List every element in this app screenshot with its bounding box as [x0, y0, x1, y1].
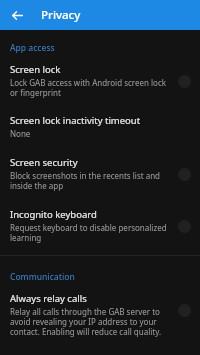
button[interactable]: Always relay calls toggle: [174, 300, 194, 320]
staticText: Incognito keyboard: [10, 208, 97, 221]
staticText: Always relay calls: [10, 292, 87, 305]
staticText: Relay all calls through the GAB server t…: [10, 306, 162, 337]
button[interactable]: Screen lock toggle: [174, 71, 194, 91]
button[interactable]: Incognito keyboard toggle: [174, 216, 194, 236]
button[interactable]: Incognito keyboard: [0, 191, 200, 243]
staticText: Screen lock inactivity timeout: [10, 114, 141, 127]
staticText: Screen lock: [10, 63, 61, 76]
staticText: Lock GAB access with Android screen lock…: [10, 77, 167, 98]
button[interactable]: Screen lock inactivity timeout: [0, 98, 200, 139]
button[interactable]: Screen security: [0, 139, 200, 191]
staticText: Request keyboard to disable personalized…: [10, 222, 167, 243]
staticText: None: [10, 128, 31, 139]
staticText: Screen security: [10, 156, 78, 169]
button[interactable]: Always relay calls: [0, 283, 200, 337]
staticText: App access: [10, 42, 200, 54]
button[interactable]: Screen security toggle: [174, 164, 194, 184]
staticText: Communication: [10, 271, 200, 283]
staticText: Block screenshots in the recents list an…: [10, 170, 161, 191]
button[interactable]: Back: [5, 3, 29, 27]
staticText: Privacy: [41, 7, 81, 23]
button[interactable]: Screen lock: [0, 54, 200, 98]
